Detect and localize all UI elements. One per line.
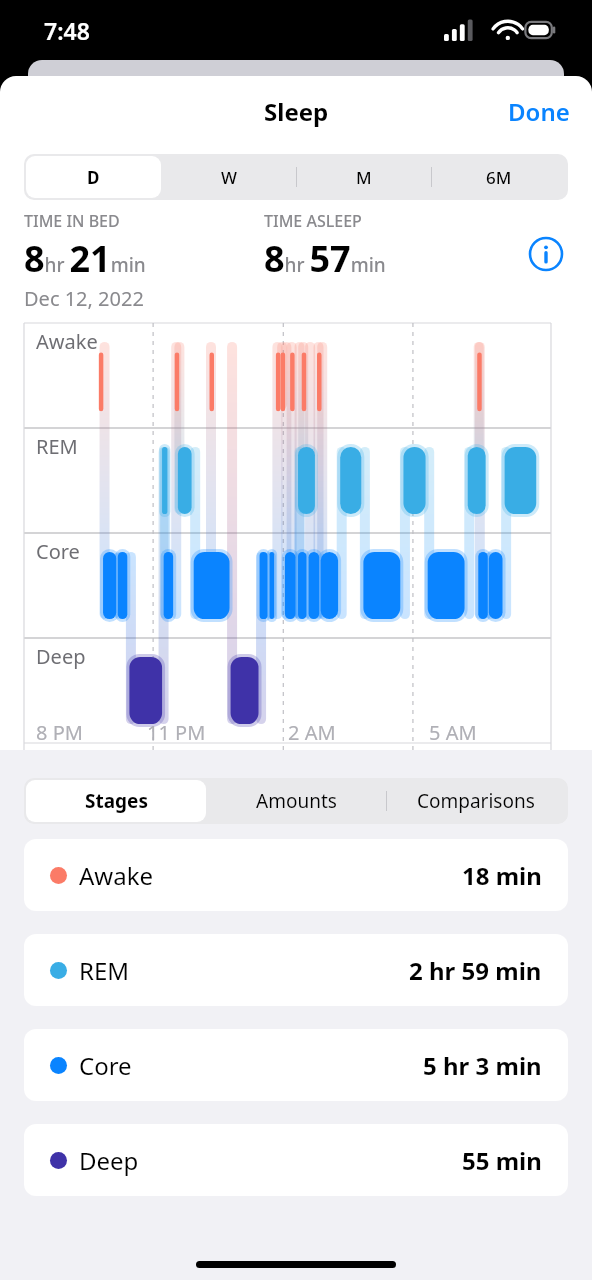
- staticText: M: [356, 166, 372, 189]
- button[interactable]: Core: [24, 1029, 568, 1101]
- button[interactable]: REM: [24, 934, 568, 1006]
- button[interactable]: W: [161, 156, 296, 198]
- staticText: Core: [36, 538, 80, 565]
- staticText: W: [221, 166, 237, 189]
- staticText: Awake: [36, 328, 98, 355]
- staticText: Dec 12, 2022: [24, 285, 144, 312]
- staticText: 2 hr 59 min: [409, 954, 542, 987]
- button[interactable]: Comparisons: [386, 780, 566, 822]
- staticText: 7:48: [44, 15, 90, 46]
- button[interactable]: Awake: [24, 839, 568, 911]
- staticText: 8 PM: [36, 719, 83, 746]
- button[interactable]: 6M: [431, 156, 566, 198]
- staticText: Deep: [36, 643, 86, 670]
- staticText: Amounts: [256, 788, 337, 814]
- staticText: D: [87, 166, 100, 189]
- staticText: REM: [36, 433, 78, 460]
- staticText: TIME IN BED: [24, 210, 120, 232]
- staticText: 18 min: [462, 859, 542, 892]
- staticText: 2 AM: [288, 719, 336, 746]
- button[interactable]: Stages: [26, 780, 206, 822]
- button[interactable]: M: [296, 156, 431, 198]
- button[interactable]: Info: [524, 232, 568, 276]
- staticText: REM: [79, 954, 130, 987]
- staticText: 8hr 57min: [264, 234, 386, 283]
- button[interactable]: Deep: [24, 1124, 568, 1196]
- staticText: 55 min: [462, 1144, 542, 1177]
- staticText: TIME ASLEEP: [264, 210, 362, 232]
- button[interactable]: Amounts: [206, 780, 386, 822]
- staticText: 8hr 21min: [24, 234, 146, 283]
- staticText: Stages: [85, 788, 148, 814]
- button[interactable]: D: [26, 156, 161, 198]
- staticText: Awake: [79, 859, 154, 892]
- staticText: Done: [508, 95, 570, 128]
- staticText: Comparisons: [417, 788, 535, 814]
- staticText: 5 hr 3 min: [423, 1049, 542, 1082]
- staticText: 5 AM: [429, 719, 477, 746]
- staticText: Core: [79, 1049, 132, 1082]
- staticText: 6M: [486, 166, 512, 189]
- button[interactable]: Done: [496, 87, 582, 136]
- staticText: Deep: [79, 1144, 139, 1177]
- staticText: 11 PM: [147, 719, 206, 746]
- staticText: Sleep: [264, 95, 329, 128]
